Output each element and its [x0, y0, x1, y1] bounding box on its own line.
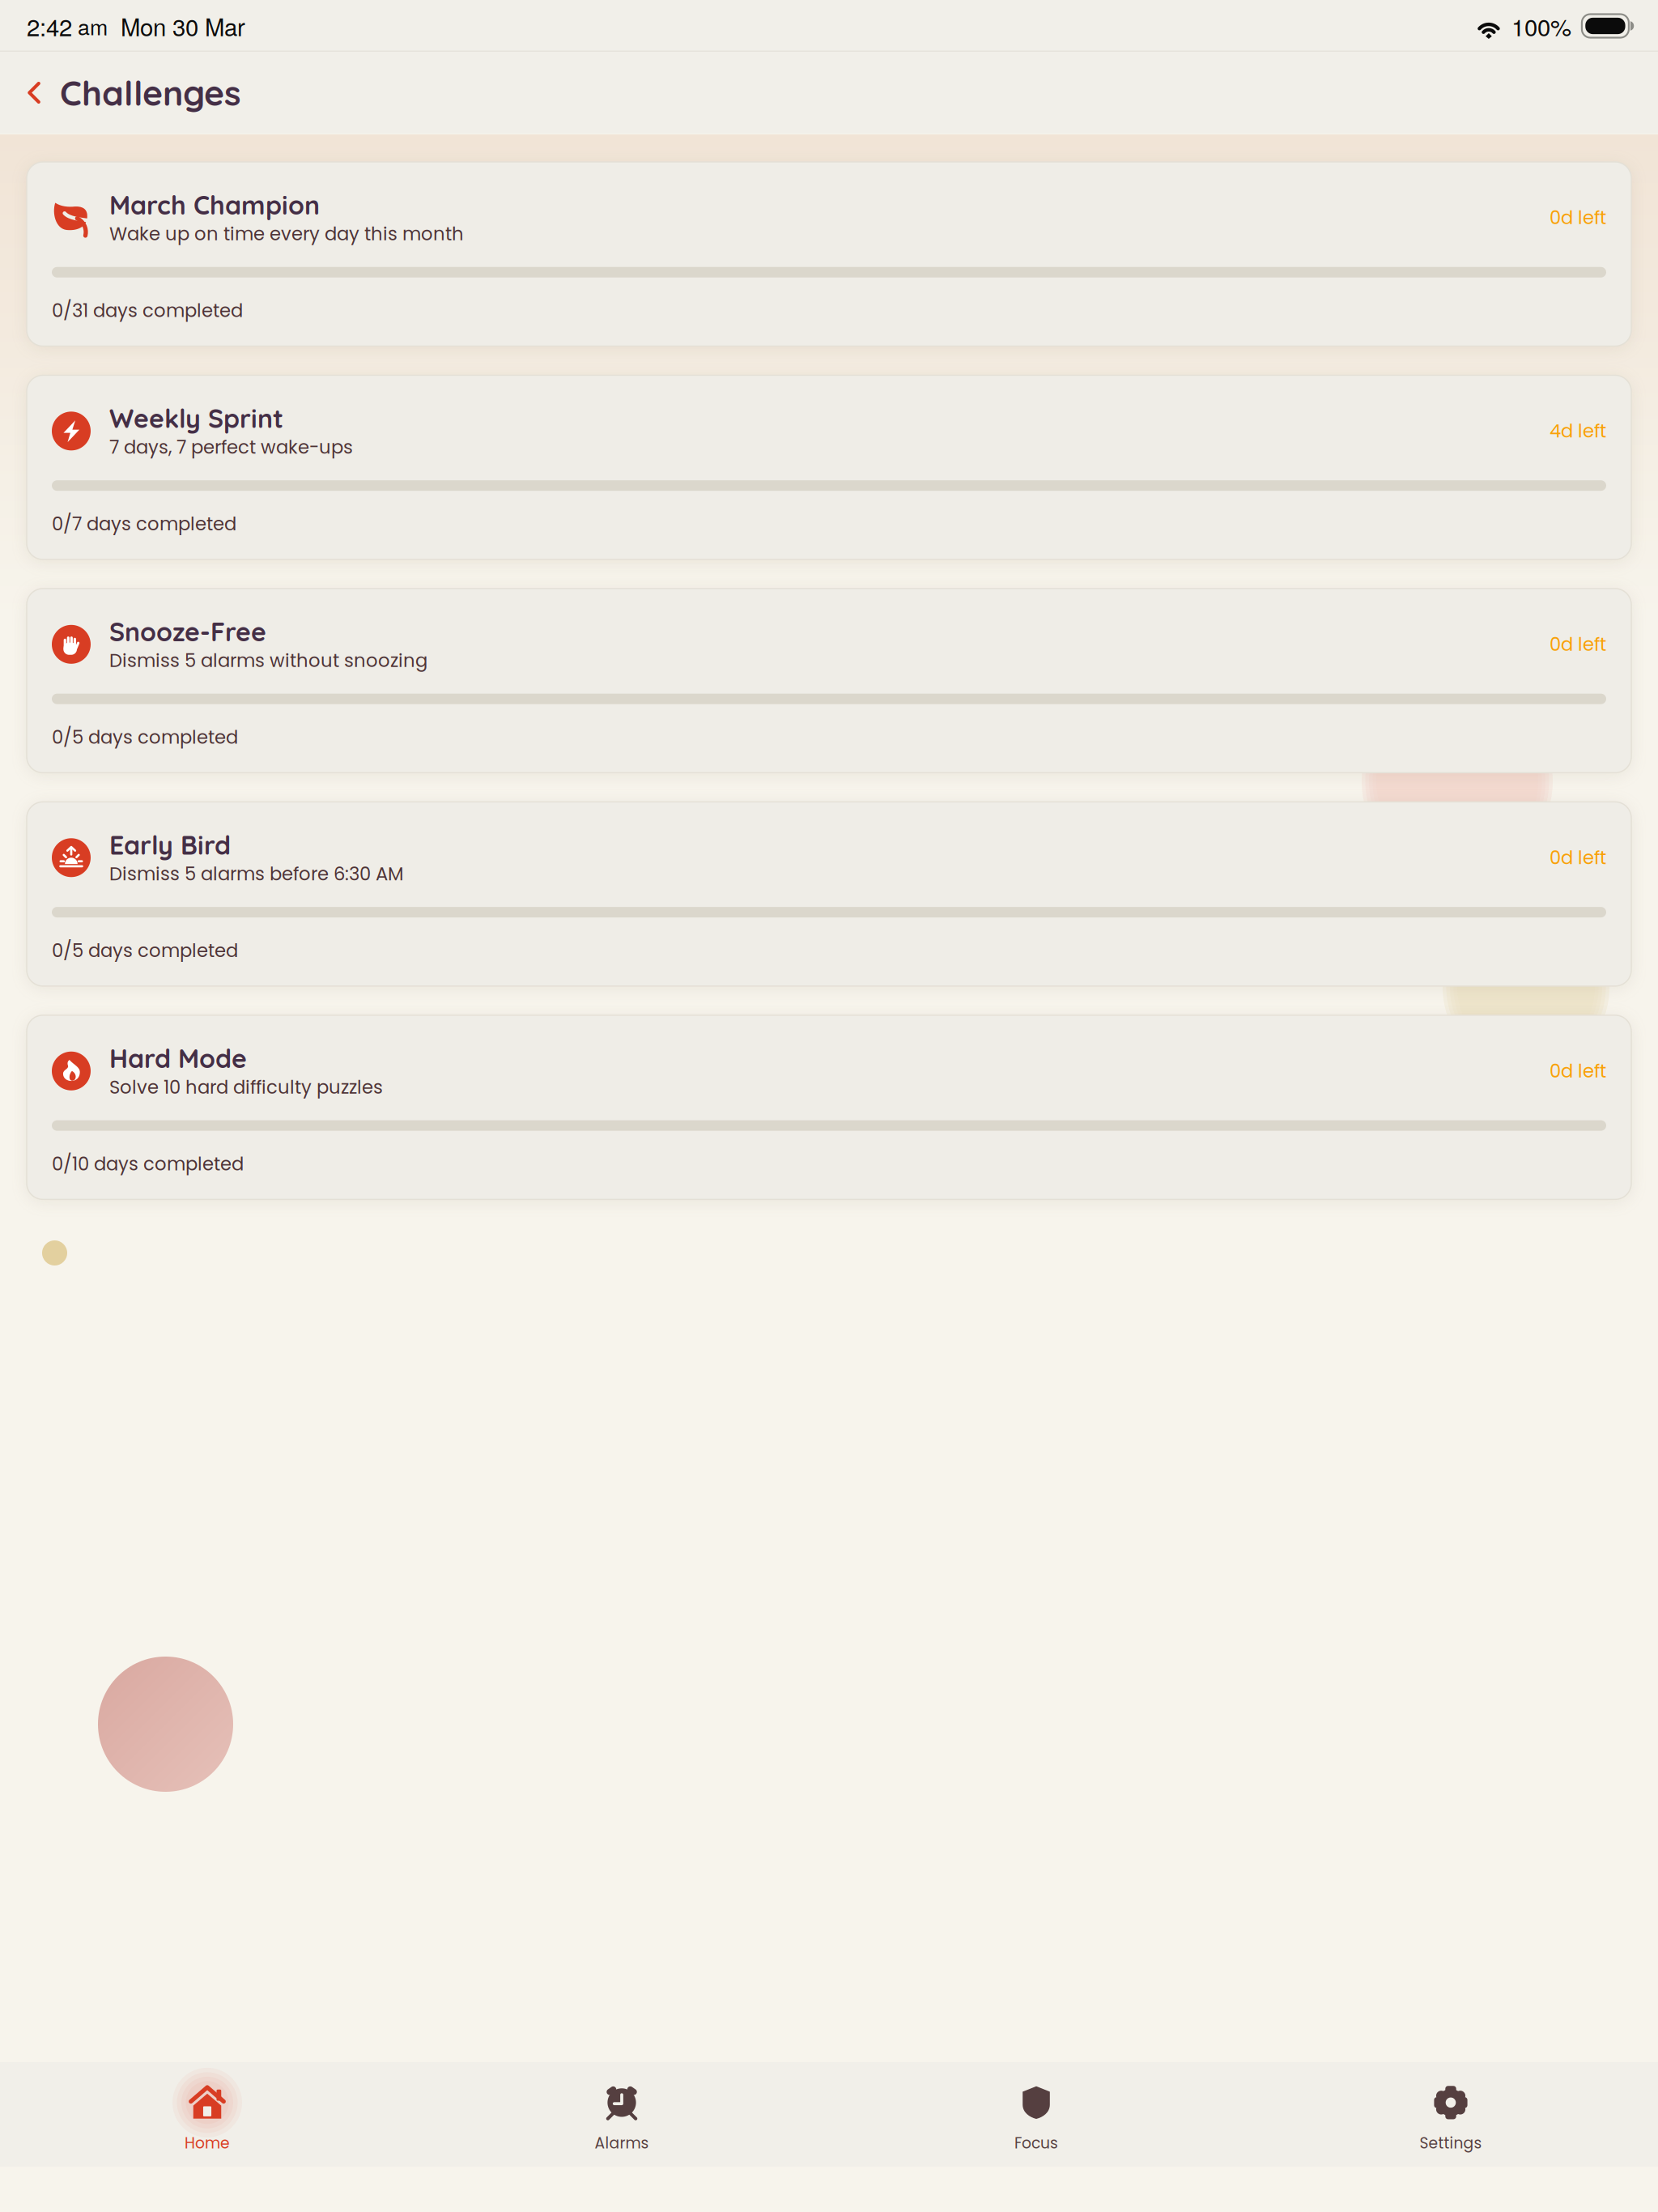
staticText: 4d left — [1550, 418, 1606, 444]
button[interactable]: Hard Mode — [27, 1015, 1631, 1199]
staticText: 0/31 days completed — [52, 298, 243, 323]
staticText: 0d left — [1550, 845, 1606, 870]
staticText: Snooze-Free — [109, 615, 266, 648]
staticText: Dismiss 5 alarms without snoozing — [109, 648, 427, 673]
staticText: Hard Mode — [109, 1042, 247, 1074]
staticText: Focus — [1014, 2133, 1058, 2154]
staticText: Wake up on time every day this month — [109, 221, 464, 247]
staticText: am — [72, 10, 108, 41]
staticText: Early Bird — [109, 829, 231, 861]
staticText: Home — [185, 2133, 230, 2154]
staticText: Weekly Sprint — [109, 402, 283, 434]
button[interactable]: Early Bird — [27, 802, 1631, 986]
staticText: March Champion — [109, 189, 320, 221]
staticText: Settings — [1420, 2133, 1482, 2154]
button[interactable]: Snooze-Free — [27, 589, 1631, 773]
staticText: Challenges — [60, 71, 241, 114]
staticText: 100% — [1511, 9, 1571, 43]
staticText: 0d left — [1550, 205, 1606, 231]
button[interactable]: Settings — [1243, 2062, 1658, 2167]
button[interactable]: Home — [0, 2062, 414, 2167]
staticText: 0/5 days completed — [52, 724, 238, 750]
button[interactable]: March Champion — [27, 162, 1631, 346]
button[interactable]: Weekly Sprint — [27, 375, 1631, 559]
button[interactable]: Focus — [829, 2062, 1243, 2167]
button[interactable]: Back — [0, 66, 60, 119]
button[interactable]: Alarms — [414, 2062, 829, 2167]
staticText: 0d left — [1550, 1058, 1606, 1084]
staticText: 0/10 days completed — [52, 1151, 244, 1177]
staticText: 0/7 days completed — [52, 511, 236, 537]
staticText: 0d left — [1550, 631, 1606, 657]
staticText: Alarms — [595, 2133, 649, 2154]
staticText: 2:42 — [27, 9, 72, 43]
staticText: 0/5 days completed — [52, 938, 238, 963]
staticText: Solve 10 hard difficulty puzzles — [109, 1074, 383, 1100]
staticText: 7 days, 7 perfect wake-ups — [109, 434, 353, 460]
staticText: Mon 30 Mar — [108, 9, 245, 43]
staticText: Dismiss 5 alarms before 6:30 AM — [109, 861, 404, 887]
